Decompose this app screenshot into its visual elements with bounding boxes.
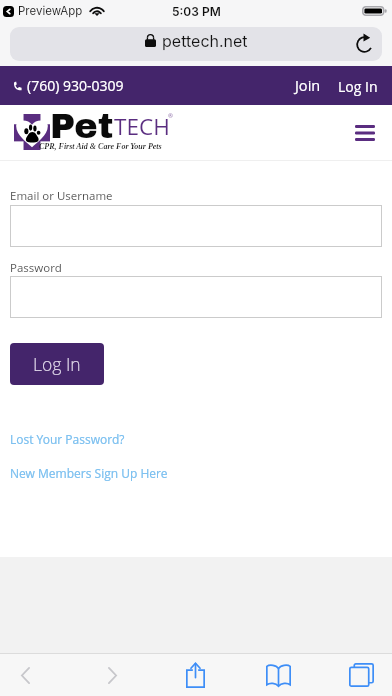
staticText: Password (10, 260, 62, 276)
button[interactable]: Lost Your Password? (10, 431, 125, 447)
button[interactable]: Back to PreviewApp (3, 4, 104, 18)
button[interactable]: (760) 930-0309 (13, 76, 124, 95)
button[interactable]: Join (292, 76, 324, 96)
staticText: Email or Username (10, 188, 113, 204)
button[interactable]: pettech.net (10, 27, 382, 61)
staticText: Log In (33, 352, 81, 376)
staticText: (760) 930-0309 (27, 76, 124, 95)
button[interactable]: Pet Tech home (8, 105, 178, 155)
staticText: ® (168, 112, 173, 120)
staticText: TECH (114, 111, 170, 142)
button[interactable]: Log In (10, 343, 104, 385)
button[interactable]: Menu (351, 119, 379, 147)
button[interactable]: Forward (86, 654, 138, 696)
button[interactable]: Share (169, 654, 221, 696)
staticText: CPR, First Aid & Care For Your Pets (39, 142, 162, 151)
staticText: Pet (50, 107, 114, 145)
button[interactable]: New Members Sign Up Here (10, 465, 168, 481)
staticText: Lost Your Password? (10, 431, 125, 447)
staticText: New Members Sign Up Here (10, 465, 168, 481)
staticText: pettech.net (162, 31, 248, 50)
button[interactable] (10, 276, 382, 318)
button[interactable]: Reload page (353, 33, 375, 55)
staticText: PreviewApp (18, 4, 83, 18)
staticText: Join (295, 76, 321, 96)
staticText: 5:03 PM (172, 4, 221, 19)
button[interactable]: Log In (335, 77, 381, 96)
staticText: Log In (338, 77, 378, 96)
button[interactable]: Tabs (335, 654, 387, 696)
button[interactable]: Back (0, 654, 51, 696)
button[interactable] (10, 205, 382, 247)
button[interactable]: Bookmarks (252, 654, 304, 696)
